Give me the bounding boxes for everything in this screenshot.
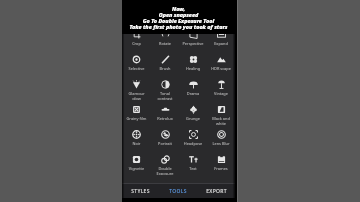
button[interactable]: Portrait — [151, 130, 179, 150]
button[interactable]: Lens Blur — [207, 130, 235, 150]
button[interactable]: Perspective — [179, 30, 207, 50]
button[interactable]: Retrolux — [151, 105, 179, 125]
staticText: STYLES — [131, 188, 150, 195]
button[interactable]: Healing — [179, 55, 207, 75]
button[interactable]: Selective — [122, 55, 151, 75]
staticText: EXPORT — [206, 188, 227, 195]
staticText: Grainy film — [122, 116, 151, 121]
button[interactable]: Vignette — [122, 155, 151, 175]
button[interactable]: Noir — [122, 130, 151, 150]
staticText: Lens Blur — [207, 141, 235, 146]
button[interactable]: Drama — [179, 80, 207, 100]
staticText: Retrolux — [151, 116, 179, 121]
button[interactable]: Grunge — [179, 105, 207, 125]
staticText: Rotate — [151, 41, 179, 46]
button[interactable]: Frames — [207, 155, 235, 175]
button[interactable]: Text — [179, 155, 207, 175]
button[interactable]: Rotate — [151, 30, 179, 50]
staticText: Text — [179, 166, 207, 171]
button[interactable]: Tonal contrast — [151, 80, 179, 100]
button[interactable]: TOOLS — [159, 184, 197, 198]
staticText: Double Exposure — [151, 166, 179, 175]
staticText: Expand — [207, 41, 235, 46]
button[interactable]: Glamour glow — [122, 80, 151, 100]
staticText: Noir — [122, 141, 151, 146]
staticText: Selective — [122, 66, 151, 71]
button[interactable]: HDR scape — [207, 55, 235, 75]
button[interactable]: Headpose — [179, 130, 207, 150]
staticText: Black and white — [207, 116, 235, 125]
button[interactable]: Crop — [122, 30, 151, 50]
staticText: Perspective — [179, 41, 207, 46]
staticText: Now, Open snapseed Go To Double Exposure… — [122, 5, 235, 30]
staticText: Healing — [179, 66, 207, 71]
staticText: Tonal contrast — [151, 91, 179, 100]
button[interactable]: Expand — [207, 30, 235, 50]
staticText: Drama — [179, 91, 207, 96]
staticText: Vignette — [122, 166, 151, 171]
staticText: Grunge — [179, 116, 207, 121]
button[interactable]: Brush — [151, 55, 179, 75]
staticText: Frames — [207, 166, 235, 171]
staticText: HDR scape — [207, 66, 235, 71]
staticText: Brush — [151, 66, 179, 71]
button[interactable]: Vintage — [207, 80, 235, 100]
button[interactable]: Black and white — [207, 105, 235, 125]
button[interactable]: Grainy film — [122, 105, 151, 125]
button[interactable]: Double Exposure — [151, 155, 179, 175]
staticText: Headpose — [179, 141, 207, 146]
staticText: TOOLS — [169, 188, 187, 195]
button[interactable]: STYLES — [122, 184, 159, 198]
button[interactable]: EXPORT — [197, 184, 235, 198]
staticText: Glamour glow — [122, 91, 151, 100]
staticText: Portrait — [151, 141, 179, 146]
staticText: Crop — [122, 41, 151, 46]
staticText: Vintage — [207, 91, 235, 96]
